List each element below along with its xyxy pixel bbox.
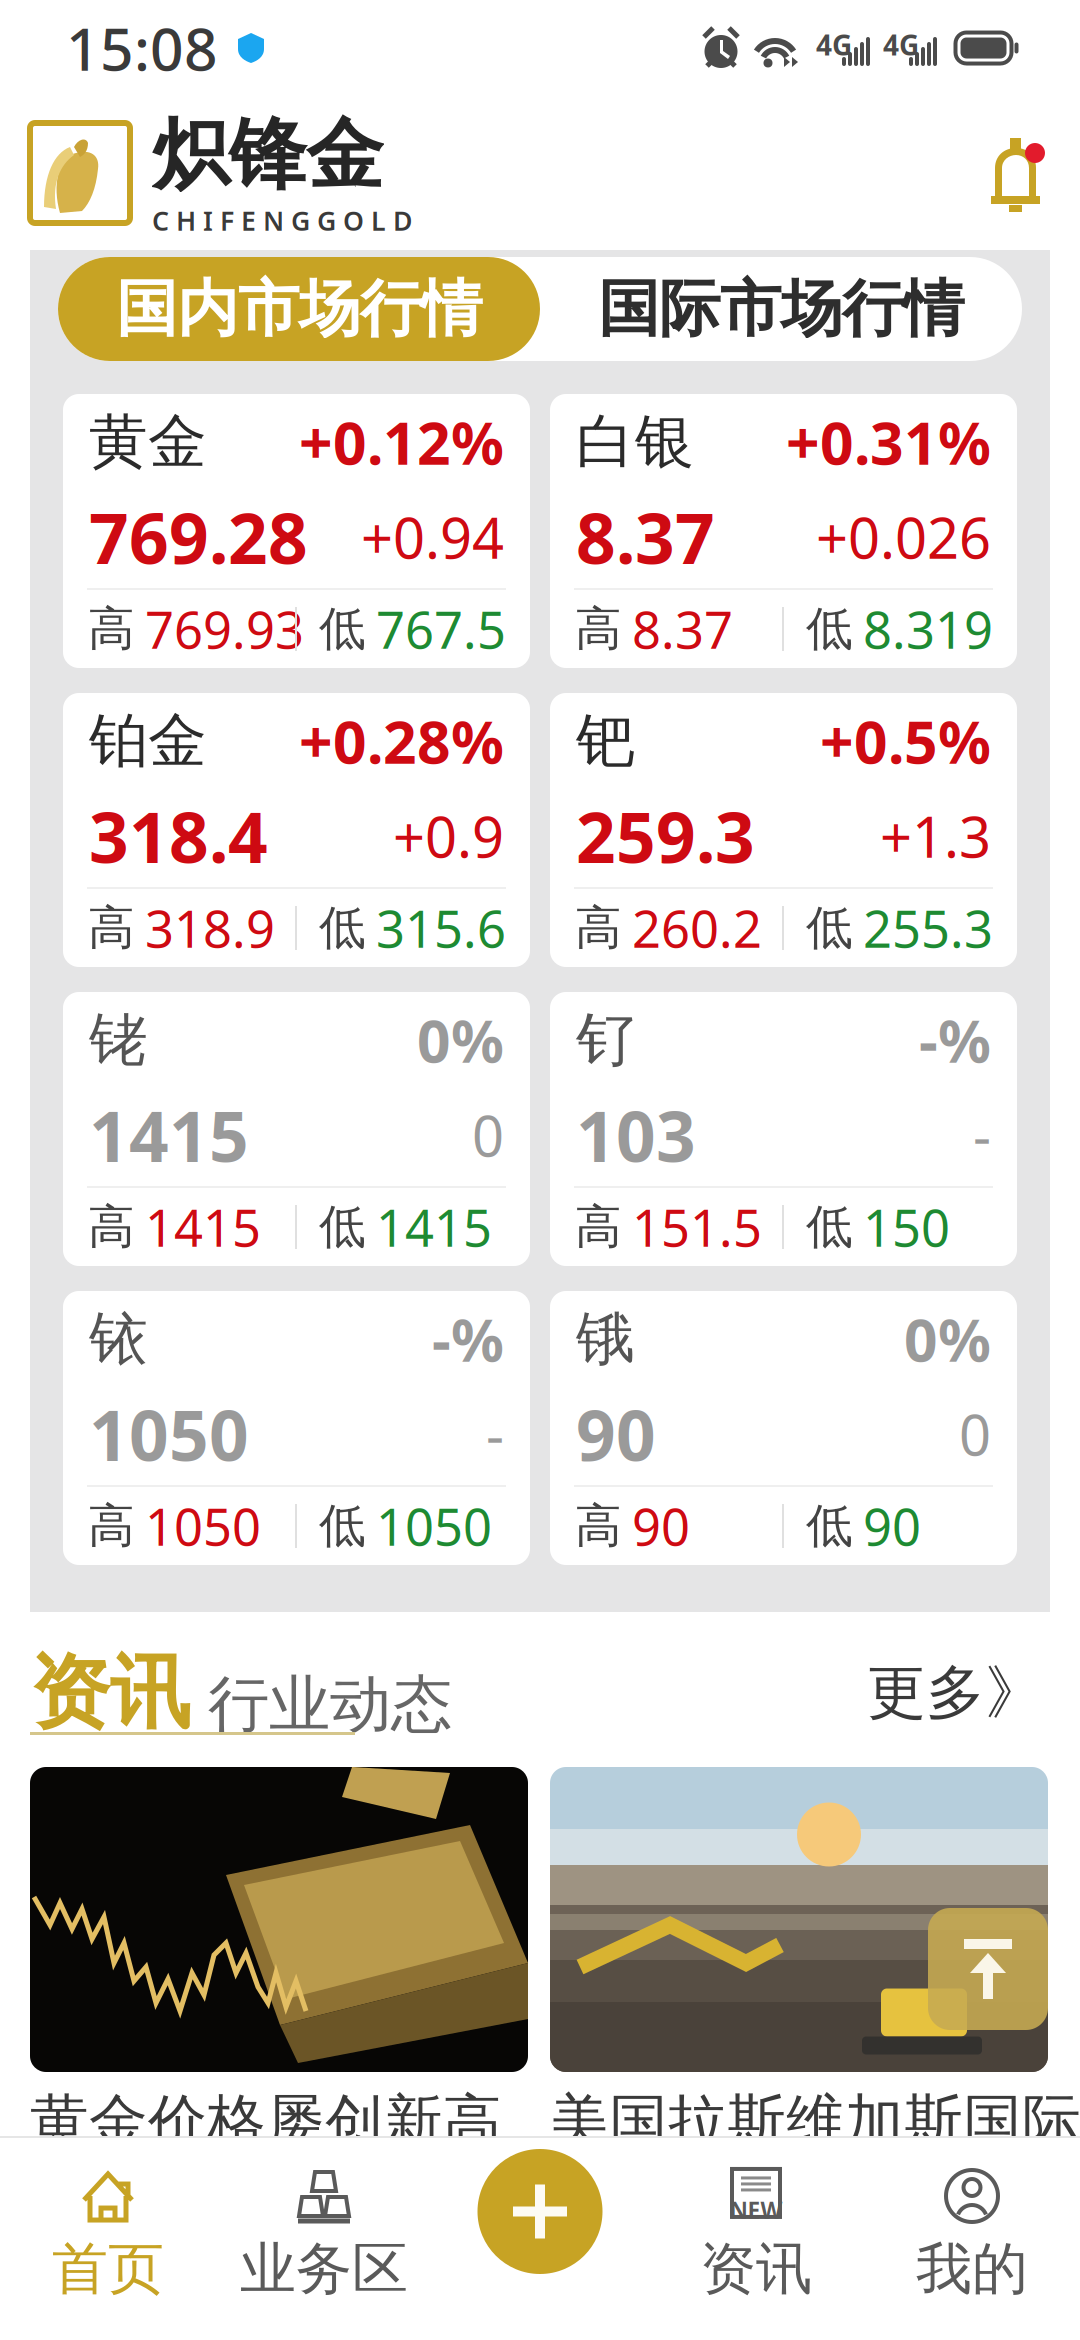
staticText: 高: [88, 899, 135, 957]
staticText: 锇: [576, 1303, 635, 1375]
button[interactable]: 黄金价格屡创新高: [30, 1767, 528, 2136]
button[interactable]: 国内市场行情: [58, 257, 540, 361]
staticText: C H I F E N G G O L D: [152, 203, 413, 238]
staticText: 我的: [916, 2235, 1028, 2303]
staticText: 低: [319, 600, 366, 658]
button[interactable]: 业务区: [216, 2138, 432, 2340]
staticText: -%: [432, 1300, 504, 1378]
button[interactable]: 我的: [864, 2138, 1080, 2340]
staticText: 高: [575, 899, 622, 957]
staticText: 高: [88, 1497, 135, 1555]
staticText: 767.5: [376, 595, 506, 663]
button[interactable]: 锇: [550, 1291, 1017, 1565]
staticText: 1050: [145, 1492, 261, 1560]
staticText: 业务区: [240, 2235, 408, 2303]
staticText: 8.37: [576, 491, 715, 583]
staticText: 151.5: [632, 1193, 762, 1261]
staticText: 低: [319, 899, 366, 957]
staticText: 8.319: [863, 595, 993, 663]
staticText: +0.94: [361, 500, 504, 574]
button[interactable]: 国际市场行情: [540, 257, 1022, 361]
button[interactable]: 铂金: [63, 693, 530, 967]
staticText: 315.6: [376, 894, 506, 962]
staticText: -: [973, 1098, 991, 1172]
staticText: 资讯: [700, 2235, 812, 2303]
button[interactable]: 首页: [0, 2138, 216, 2340]
staticText: 高: [88, 600, 135, 658]
button[interactable]: 回到顶部: [928, 1908, 1048, 2030]
staticText: 0%: [904, 1300, 991, 1378]
staticText: +0.026: [816, 500, 991, 574]
staticText: 1050: [89, 1388, 249, 1480]
staticText: 首页: [52, 2235, 164, 2303]
staticText: 260.2: [632, 894, 762, 962]
staticText: 低: [319, 1198, 366, 1256]
staticText: 白银: [576, 406, 694, 478]
staticText: +0.12%: [299, 403, 504, 481]
staticText: 1050: [376, 1492, 492, 1560]
staticText: 150: [863, 1193, 950, 1261]
staticText: +0.5%: [820, 702, 991, 780]
staticText: -: [486, 1397, 504, 1471]
staticText: +0.31%: [786, 403, 991, 481]
staticText: 黄金价格屡创新高: [30, 2086, 502, 2158]
staticText: 1415: [376, 1193, 492, 1261]
staticText: 低: [806, 899, 853, 957]
staticText: 769.28: [89, 491, 308, 583]
staticText: 90: [576, 1388, 656, 1480]
staticText: 更多》: [867, 1657, 1044, 1729]
staticText: 0: [959, 1397, 991, 1471]
staticText: 4G: [883, 26, 919, 63]
staticText: 高: [88, 1198, 135, 1256]
button[interactable]: NEW: [648, 2138, 864, 2340]
staticText: 美国拉斯维加斯国际消费类: [550, 2086, 1080, 2158]
staticText: 行业动态: [208, 1667, 452, 1742]
button[interactable]: 铑: [63, 992, 530, 1266]
button[interactable]: 铱: [63, 1291, 530, 1565]
staticText: 低: [806, 1198, 853, 1256]
button[interactable]: 钌: [550, 992, 1017, 1266]
button[interactable]: 新建: [477, 2149, 602, 2274]
button[interactable]: 黄金: [63, 394, 530, 668]
button[interactable]: 美国拉斯维加斯国际消费类: [550, 1767, 1048, 2136]
staticText: 国际市场行情: [598, 271, 964, 347]
staticText: 低: [319, 1497, 366, 1555]
staticText: 炽锋金: [152, 108, 383, 203]
staticText: 0%: [417, 1001, 504, 1079]
staticText: 259.3: [576, 790, 755, 882]
staticText: 318.9: [145, 894, 275, 962]
staticText: NEW: [729, 2195, 782, 2225]
staticText: 1415: [145, 1193, 261, 1261]
staticText: 低: [806, 1497, 853, 1555]
staticText: +0.9: [393, 799, 504, 873]
staticText: 15:08: [66, 9, 218, 87]
staticText: 318.4: [89, 790, 268, 882]
staticText: 黄金: [89, 406, 207, 478]
staticText: 1415: [89, 1089, 249, 1181]
staticText: 高: [575, 1198, 622, 1256]
staticText: 103: [576, 1089, 696, 1181]
staticText: 钯: [576, 705, 635, 777]
button[interactable]: 更多》: [867, 1654, 1044, 1732]
staticText: 国内市场行情: [116, 271, 482, 347]
staticText: 0: [472, 1098, 504, 1172]
staticText: +0.28%: [299, 702, 504, 780]
staticText: -%: [919, 1001, 991, 1079]
staticText: 4G: [816, 26, 852, 63]
staticText: 铑: [89, 1004, 148, 1076]
staticText: 铂金: [89, 705, 207, 777]
staticText: 铱: [89, 1303, 148, 1375]
staticText: 钌: [576, 1004, 635, 1076]
staticText: 资讯: [30, 1644, 190, 1742]
staticText: 90: [863, 1492, 921, 1560]
staticText: 低: [806, 600, 853, 658]
staticText: 769.93: [145, 595, 304, 663]
button[interactable]: 白银: [550, 394, 1017, 668]
staticText: 高: [575, 1497, 622, 1555]
staticText: 90: [632, 1492, 690, 1560]
staticText: 255.3: [863, 894, 993, 962]
button[interactable]: 通知: [986, 135, 1044, 211]
button[interactable]: 钯: [550, 693, 1017, 967]
staticText: +1.3: [880, 799, 991, 873]
staticText: 高: [575, 600, 622, 658]
